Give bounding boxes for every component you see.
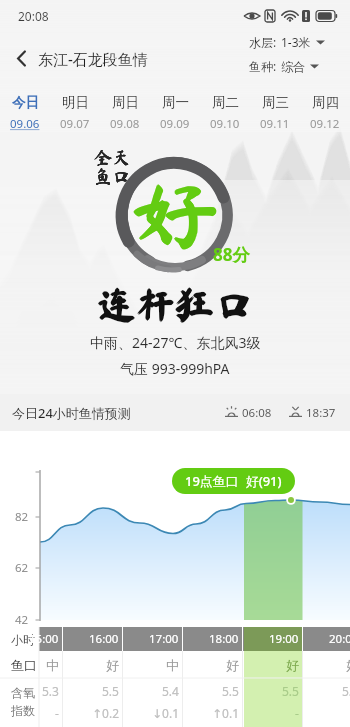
button[interactable]: 17:00 <box>123 627 179 723</box>
staticText: 20:08 <box>18 8 49 24</box>
staticText: 88分 <box>213 243 250 266</box>
staticText: 09.08 <box>110 116 140 132</box>
staticText: 指数 <box>11 703 35 718</box>
staticText: 18:37 <box>306 405 336 421</box>
staticText: 小时 <box>11 632 35 647</box>
staticText: 气压 993-999hPA <box>120 359 230 378</box>
button[interactable]: 15:00 <box>3 627 59 723</box>
staticText: 周三 <box>262 94 289 111</box>
staticText: 好 <box>119 171 231 259</box>
staticText: 全天 <box>94 148 154 166</box>
staticText: 明日 <box>62 94 89 111</box>
staticText: 18:00 <box>209 631 239 647</box>
staticText: 全天 <box>94 148 154 166</box>
staticText: 09.07 <box>60 116 90 132</box>
staticText: 15:00 <box>29 631 59 647</box>
staticText: 鱼口 <box>94 167 154 185</box>
staticText: ↑0.2 <box>92 705 119 721</box>
staticText: 5.5 <box>282 683 299 699</box>
staticText: 全天 <box>94 148 154 166</box>
staticText: 82 <box>15 509 29 525</box>
staticText: - <box>295 705 299 721</box>
staticText: 周日 <box>112 94 139 111</box>
staticText: 连杆狂口 <box>76 285 276 324</box>
button[interactable]: 周日 <box>100 88 150 138</box>
staticText: 好 <box>119 170 231 258</box>
staticText: 好 <box>346 657 350 673</box>
staticText: 全天 <box>94 148 154 166</box>
staticText: 鱼口 <box>94 167 154 185</box>
staticText: 东江-石龙段鱼情 <box>38 49 148 69</box>
staticText: 综合 <box>281 59 305 74</box>
staticText: 好 <box>286 657 299 673</box>
staticText: 好 <box>120 171 232 259</box>
staticText: 09.10 <box>210 116 240 132</box>
button[interactable]: 鱼种: <box>249 58 319 74</box>
button[interactable]: 明日 <box>50 88 100 138</box>
staticText: 09.12 <box>310 116 340 132</box>
staticText: 5.4 <box>162 683 179 699</box>
button[interactable]: 周三 <box>250 88 300 138</box>
staticText: 17:00 <box>149 631 179 647</box>
staticText: 09.09 <box>160 116 190 132</box>
staticText: 水层: <box>249 34 277 50</box>
staticText: ↑0.1 <box>212 705 239 721</box>
button[interactable]: 周二 <box>200 88 250 138</box>
button[interactable]: 周一 <box>150 88 200 138</box>
staticText: 含氧 <box>11 685 35 700</box>
staticText: 周四 <box>312 94 339 111</box>
staticText: 好 <box>106 657 119 673</box>
staticText: 连杆狂口 <box>75 285 275 324</box>
staticText: 5.3 <box>42 683 59 699</box>
staticText: 鱼口 <box>94 167 154 185</box>
button[interactable]: Back <box>1 38 41 78</box>
staticText: 周一 <box>162 94 189 111</box>
button[interactable]: 今日 <box>0 88 50 138</box>
staticText: 鱼口 <box>94 167 154 185</box>
staticText: 20:00 <box>329 631 350 647</box>
staticText: 5.5 <box>342 683 350 699</box>
button[interactable]: 19点鱼口 好(91) <box>172 468 295 494</box>
staticText: 鱼口 <box>94 167 154 185</box>
button[interactable]: 周四 <box>300 88 350 138</box>
staticText: 鱼种: <box>249 58 277 74</box>
staticText: ↓0.1 <box>152 705 179 721</box>
staticText: 16:00 <box>89 631 119 647</box>
staticText: 中雨、24-27℃、东北风3级 <box>90 333 261 352</box>
staticText: 好 <box>118 171 230 259</box>
staticText: 19点鱼口 好(91) <box>185 472 282 490</box>
staticText: 连杆狂口 <box>75 284 275 323</box>
staticText: 连杆狂口 <box>75 286 275 325</box>
staticText: 今日 <box>12 94 39 111</box>
staticText: 09.11 <box>260 116 290 132</box>
staticText: 1-3米 <box>281 34 311 50</box>
staticText: 62 <box>15 560 29 576</box>
staticText: - <box>55 705 59 721</box>
staticText: 中 <box>166 657 179 673</box>
staticText: 全天 <box>94 148 154 166</box>
staticText: 5.5 <box>102 683 119 699</box>
staticText: 好 <box>226 657 239 673</box>
staticText: 好 <box>119 172 231 260</box>
staticText: 中 <box>46 657 59 673</box>
staticText: 42 <box>15 612 29 628</box>
staticText: 19:00 <box>269 631 299 647</box>
staticText: 5.5 <box>222 683 239 699</box>
button[interactable]: 16:00 <box>63 627 119 723</box>
staticText: 连杆狂口 <box>74 285 274 324</box>
staticText: 09.06 <box>10 116 40 132</box>
button[interactable]: 19:00 <box>243 627 299 723</box>
staticText: 鱼口 <box>11 657 37 673</box>
staticText: 今日24小时鱼情预测 <box>12 404 131 422</box>
button[interactable]: 水层: <box>249 34 325 50</box>
button[interactable]: 20:00 <box>303 627 350 723</box>
staticText: 06:08 <box>242 405 272 421</box>
button[interactable]: 18:00 <box>183 627 239 723</box>
staticText: 周二 <box>212 94 239 111</box>
